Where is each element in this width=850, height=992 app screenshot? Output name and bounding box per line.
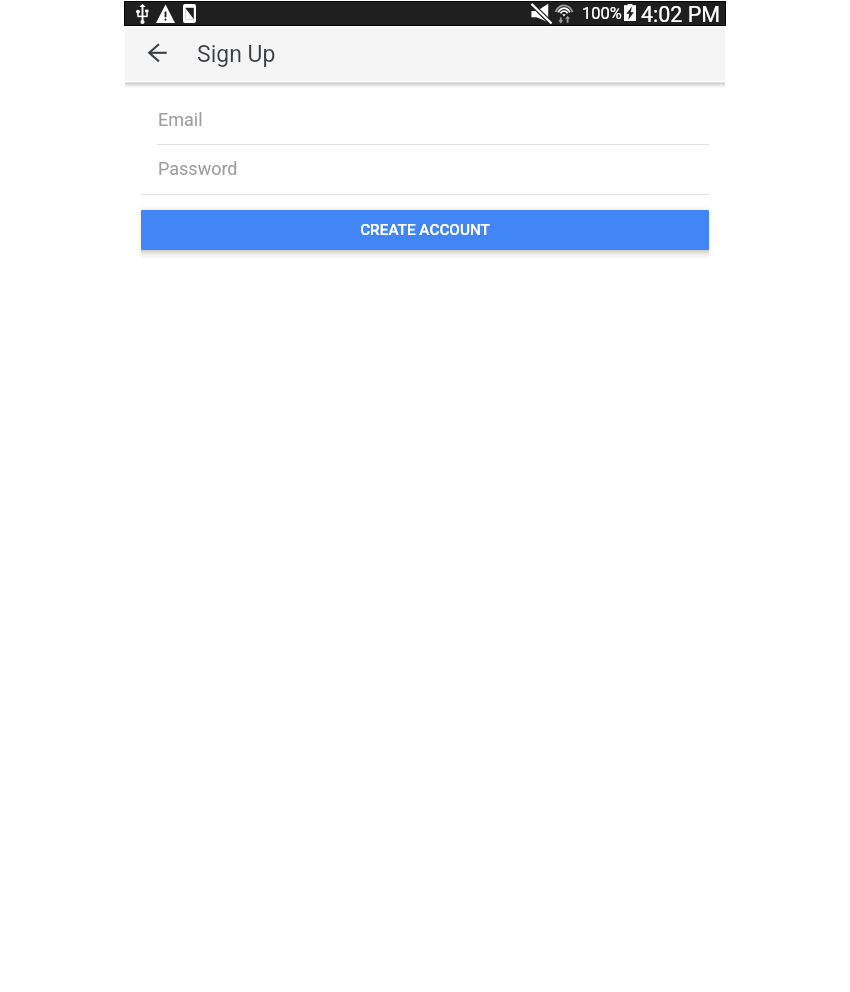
staticText: Password bbox=[158, 158, 238, 179]
button[interactable]: Email bbox=[157, 97, 709, 145]
button[interactable]: CREATE ACCOUNT bbox=[141, 210, 709, 250]
staticText: Email bbox=[158, 109, 203, 130]
button[interactable]: Navigate up bbox=[134, 30, 182, 78]
button[interactable]: Password bbox=[141, 147, 709, 195]
staticText: 4:02 PM bbox=[641, 2, 721, 25]
staticText: 100% bbox=[582, 4, 622, 23]
staticText: Sign Up bbox=[197, 41, 276, 68]
staticText: CREATE ACCOUNT bbox=[360, 221, 490, 239]
